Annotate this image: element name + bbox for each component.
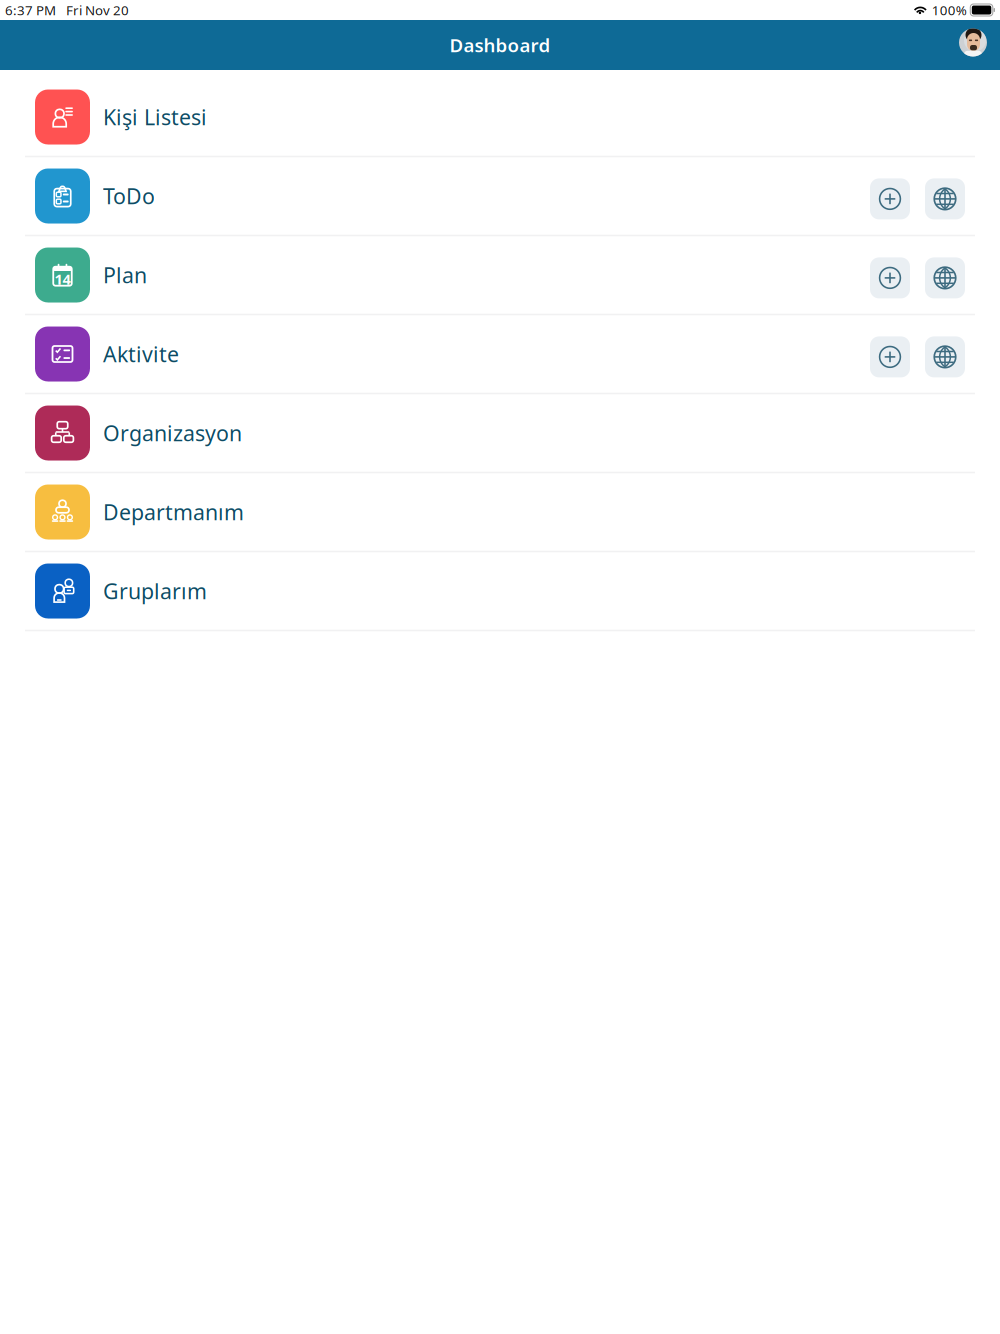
staticText: 6:37 PM: [5, 1, 56, 19]
button[interactable]: Web Plan: [925, 257, 965, 298]
button[interactable]: Departmanım: [0, 473, 1000, 552]
button[interactable]: Profil: [959, 28, 987, 56]
button[interactable]: Ekle ToDo: [870, 178, 910, 219]
staticText: Organizasyon: [103, 419, 242, 447]
button[interactable]: Web ToDo: [925, 178, 965, 219]
staticText: 100%: [932, 1, 967, 19]
staticText: Dashboard: [449, 33, 550, 57]
button[interactable]: Web Aktivite: [925, 336, 965, 377]
staticText: Kişi Listesi: [103, 103, 207, 131]
button[interactable]: 14: [0, 236, 1000, 315]
button[interactable]: Ekle Plan: [870, 257, 910, 298]
staticText: 14: [54, 269, 70, 289]
button[interactable]: Ekle Aktivite: [870, 336, 910, 377]
staticText: ToDo: [103, 182, 155, 210]
staticText: Gruplarım: [103, 577, 207, 605]
button[interactable]: Aktivite: [0, 315, 1000, 394]
staticText: Fri Nov 20: [66, 1, 129, 19]
button[interactable]: ToDo: [0, 157, 1000, 236]
staticText: Departmanım: [103, 498, 244, 526]
staticText: Aktivite: [103, 340, 179, 368]
button[interactable]: Kişi Listesi: [0, 78, 1000, 157]
button[interactable]: Organizasyon: [0, 394, 1000, 473]
button[interactable]: Gruplarım: [0, 552, 1000, 631]
staticText: Plan: [103, 261, 147, 289]
